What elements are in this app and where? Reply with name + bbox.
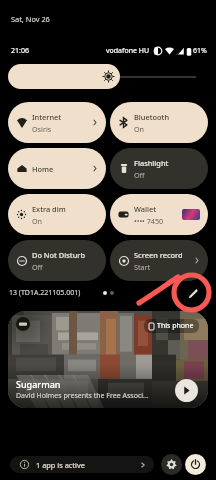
button[interactable]: Bluetooth	[110, 102, 208, 143]
staticText: 61%	[193, 46, 207, 56]
staticText: 1 app is active	[36, 460, 85, 470]
button[interactable]: Settings	[161, 454, 182, 475]
staticText: Sugarman	[16, 378, 61, 390]
staticText: Off	[134, 170, 145, 180]
button[interactable]: Sugarman	[8, 311, 208, 408]
button[interactable]: 1 app is active	[10, 456, 154, 473]
staticText: On	[134, 124, 145, 134]
button[interactable]: This phone	[144, 319, 199, 333]
staticText: Bluetooth	[134, 112, 170, 122]
button[interactable]: Edit tiles	[184, 284, 202, 302]
staticText: Osiris	[32, 124, 52, 134]
staticText: 21:06	[11, 46, 29, 56]
staticText: 13 (TD1A.221105.001)	[9, 288, 81, 298]
staticText: •••• 7450	[134, 216, 164, 226]
button[interactable]: Screen record	[110, 240, 208, 281]
staticText: This phone	[157, 321, 194, 331]
button[interactable]: Brightness	[8, 64, 120, 89]
button[interactable]: Play	[175, 379, 198, 402]
staticText: Extra dim	[32, 204, 66, 214]
staticText: Sat, Nov 26	[11, 14, 50, 24]
button[interactable]: Extra dim	[8, 194, 106, 235]
staticText: Do Not Disturb	[32, 250, 86, 260]
staticText: Wallet	[134, 204, 157, 214]
button[interactable]: Flashlight	[110, 148, 208, 189]
staticText: Flashlight	[134, 158, 169, 168]
staticText: Internet	[32, 112, 62, 122]
staticText: Home	[32, 164, 54, 174]
staticText: On	[32, 216, 43, 226]
button[interactable]: Home	[8, 148, 106, 189]
button[interactable]: Internet	[8, 102, 106, 143]
staticText: David Holmes presents the Free Associ...	[16, 391, 149, 401]
staticText: Screen record	[134, 250, 183, 260]
staticText: Start	[134, 262, 151, 272]
button[interactable]: Power	[185, 454, 206, 475]
button[interactable]: Wallet	[110, 194, 208, 235]
staticText: vodafone HU	[106, 46, 150, 56]
button[interactable]: Do Not Disturb	[8, 240, 106, 281]
staticText: Off	[32, 262, 43, 272]
